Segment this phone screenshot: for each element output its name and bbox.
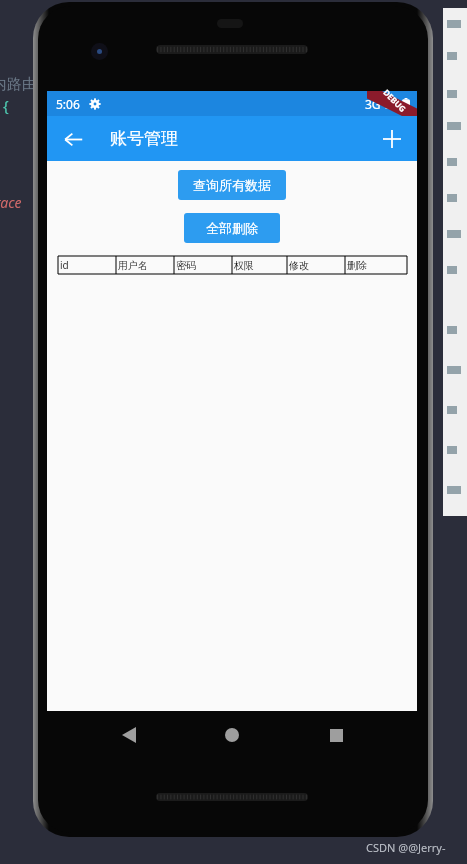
staticText: CSDN @@Jerry- bbox=[366, 840, 446, 855]
staticText: 3G bbox=[365, 96, 381, 112]
staticText: 5:06 bbox=[56, 96, 80, 112]
staticText: 权限 bbox=[234, 259, 254, 272]
button[interactable]: 查询所有数据 bbox=[178, 170, 286, 200]
button[interactable]: 全部删除 bbox=[184, 213, 280, 243]
staticText: 用户名 bbox=[118, 259, 148, 272]
staticText: race bbox=[0, 193, 22, 212]
staticText: 修改 bbox=[289, 259, 309, 272]
staticText: 全部删除 bbox=[206, 220, 258, 236]
staticText: 密码 bbox=[176, 259, 196, 272]
button[interactable]: Back bbox=[107, 713, 151, 757]
staticText: 查询所有数据 bbox=[193, 177, 271, 193]
button[interactable]: Recent apps bbox=[314, 713, 358, 757]
staticText: 账号管理 bbox=[110, 128, 178, 149]
button[interactable]: Add bbox=[375, 122, 409, 156]
button[interactable]: Back bbox=[56, 122, 90, 156]
staticText: 内路由 bbox=[0, 75, 37, 94]
staticText: id bbox=[60, 258, 69, 272]
staticText: 删除 bbox=[347, 259, 367, 272]
staticText: DEBUG bbox=[381, 87, 409, 114]
staticText: { bbox=[3, 95, 9, 115]
button[interactable]: Home bbox=[210, 713, 254, 757]
